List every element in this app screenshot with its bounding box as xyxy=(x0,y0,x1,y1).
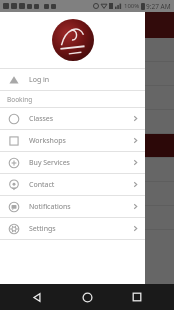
staticText: Rossi (Classes) xyxy=(34,148,75,156)
staticText: PM xyxy=(13,196,22,203)
staticText: 10:00 xyxy=(7,89,28,100)
staticText: Pilates Reformer xyxy=(34,64,105,76)
staticText: AM xyxy=(13,100,22,107)
staticText: AM xyxy=(13,124,22,131)
button[interactable]: Workshops xyxy=(0,130,145,151)
staticText: 9:27 AM xyxy=(146,2,171,11)
staticText: Classes xyxy=(29,114,132,124)
staticText: 1:00 xyxy=(9,161,25,172)
button[interactable]: Notifications xyxy=(0,196,145,217)
staticText: Pilates Reformer xyxy=(34,160,105,172)
button[interactable]: Recent apps xyxy=(124,284,150,310)
staticText: PM xyxy=(13,220,22,227)
button[interactable]: Buy Services xyxy=(0,152,145,173)
staticText: Pilates Reformer xyxy=(34,88,105,100)
staticText: 12:00 xyxy=(7,137,28,148)
staticText: 11:00 xyxy=(7,113,28,124)
staticText: Notifications xyxy=(29,202,132,212)
staticText: Pilates Reformer xyxy=(34,136,105,148)
staticText: Log in xyxy=(29,75,50,85)
staticText: 3:00 xyxy=(9,209,25,220)
button[interactable]: Contact xyxy=(0,174,145,195)
staticText: Pilates Reformer xyxy=(34,40,105,52)
staticText: PM xyxy=(13,172,22,179)
button[interactable]: Log in xyxy=(0,69,145,90)
staticText: Pilates Reformer xyxy=(34,208,105,220)
staticText: Rossi (Classes) xyxy=(34,52,75,60)
staticText: Booking xyxy=(7,95,33,104)
staticText: Rossi (Classes) xyxy=(34,124,75,132)
staticText: Rossi (Classes) xyxy=(34,172,75,180)
button[interactable]: Back xyxy=(24,284,50,310)
staticText: Workshops xyxy=(29,136,132,146)
button[interactable]: Classes xyxy=(0,108,145,129)
staticText: Rossi (Classes) xyxy=(34,100,75,108)
staticText: 2:00 xyxy=(9,185,25,196)
staticText: Settings xyxy=(29,224,132,234)
staticText: Pilates Reformer xyxy=(34,184,105,196)
staticText: PM xyxy=(13,148,22,155)
button[interactable]: Home xyxy=(74,284,100,310)
staticText: 9:00 xyxy=(9,65,25,76)
staticText: AM xyxy=(13,76,22,83)
staticText: Rossi (Classes) xyxy=(34,220,75,228)
button[interactable]: Settings xyxy=(0,218,145,239)
staticText: Buy Services xyxy=(29,158,132,168)
staticText: 100% xyxy=(124,2,140,10)
staticText: Pilates Reformer xyxy=(34,112,105,124)
staticText: Rossi (Classes) xyxy=(34,76,75,84)
staticText: Contact xyxy=(29,180,132,190)
